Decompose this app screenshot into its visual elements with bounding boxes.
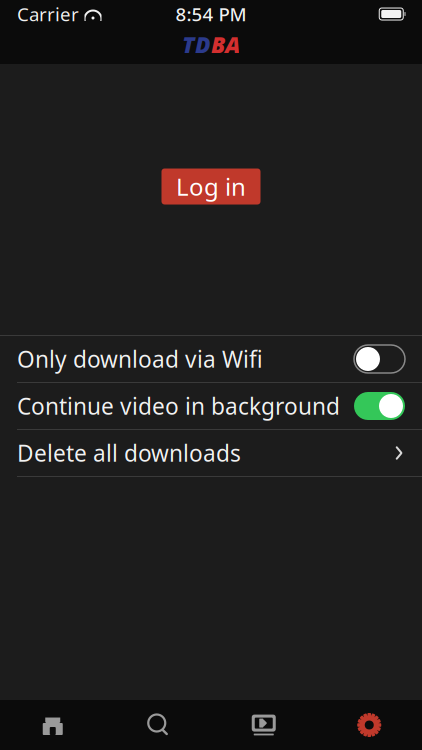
button[interactable]: Delete all downloads xyxy=(0,430,422,476)
staticText: Delete all downloads xyxy=(17,438,241,468)
button[interactable]: Home xyxy=(0,700,105,750)
staticText: Log in xyxy=(176,171,246,202)
button[interactable]: Videos xyxy=(211,700,316,750)
button[interactable]: Log in xyxy=(161,168,260,204)
staticText: Only download via Wifi xyxy=(17,344,263,374)
button[interactable]: Continue video in background xyxy=(0,383,422,429)
staticText: BA xyxy=(211,29,240,59)
button[interactable]: Search xyxy=(105,700,211,750)
staticText: Carrier xyxy=(17,2,79,26)
staticText: 8:54 PM xyxy=(175,2,246,26)
button[interactable]: Only download via Wifi xyxy=(0,336,422,382)
button[interactable]: Settings xyxy=(316,700,422,750)
staticText: TD xyxy=(182,29,211,59)
staticText: Continue video in background xyxy=(17,391,340,421)
